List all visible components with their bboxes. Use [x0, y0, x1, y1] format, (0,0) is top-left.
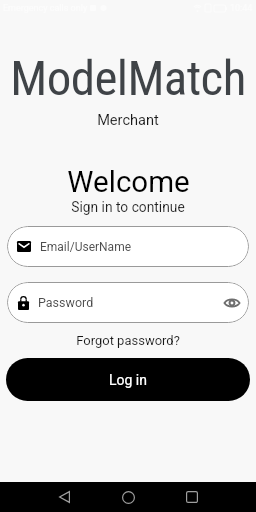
- staticText: Email/UserName: [40, 240, 132, 254]
- staticText: Forgot password?: [76, 333, 180, 348]
- staticText: ModelMatch: [10, 50, 246, 107]
- staticText: Password: [38, 295, 94, 310]
- button[interactable]: Show password: [222, 293, 242, 313]
- staticText: Merchant: [97, 111, 159, 128]
- button[interactable]: Back: [42, 482, 86, 512]
- button[interactable]: Log in: [6, 358, 250, 401]
- button[interactable]: Home: [106, 482, 150, 512]
- staticText: Sign in to continue: [71, 199, 185, 215]
- staticText: Welcome: [67, 165, 190, 200]
- button[interactable]: Recents: [170, 482, 214, 512]
- staticText: Log in: [109, 372, 147, 388]
- button[interactable]: Email/UserName: [7, 226, 249, 267]
- button[interactable]: Password: [7, 282, 249, 323]
